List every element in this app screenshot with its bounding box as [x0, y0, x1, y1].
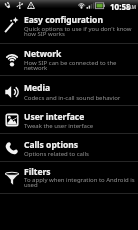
staticText: Calls options — [24, 139, 79, 151]
button[interactable]: Filters — [0, 162, 138, 193]
staticText: Quick options to use if you don't know h… — [24, 25, 135, 37]
button[interactable]: Calls options — [0, 134, 138, 161]
staticText: Filters — [24, 166, 51, 178]
staticText: Media — [24, 82, 51, 94]
staticText: AM — [128, 4, 137, 11]
staticText: Options related to calls — [24, 150, 89, 158]
button[interactable]: Easy configuration — [0, 12, 138, 43]
staticText: How SIP can be connected to the network — [24, 59, 135, 71]
staticText: To apply when integration to Android is … — [24, 176, 135, 188]
staticText: 10:58 — [110, 1, 131, 12]
button[interactable]: Media — [0, 76, 138, 105]
staticText: Network — [24, 48, 62, 60]
staticText: User interface — [24, 111, 85, 123]
staticText: Easy configuration — [24, 14, 103, 26]
staticText: Codecs and in-call sound behavior — [24, 94, 121, 102]
button[interactable]: Network — [0, 44, 138, 75]
button[interactable]: User interface — [0, 106, 138, 133]
staticText: Tweak the user interface — [24, 122, 94, 130]
